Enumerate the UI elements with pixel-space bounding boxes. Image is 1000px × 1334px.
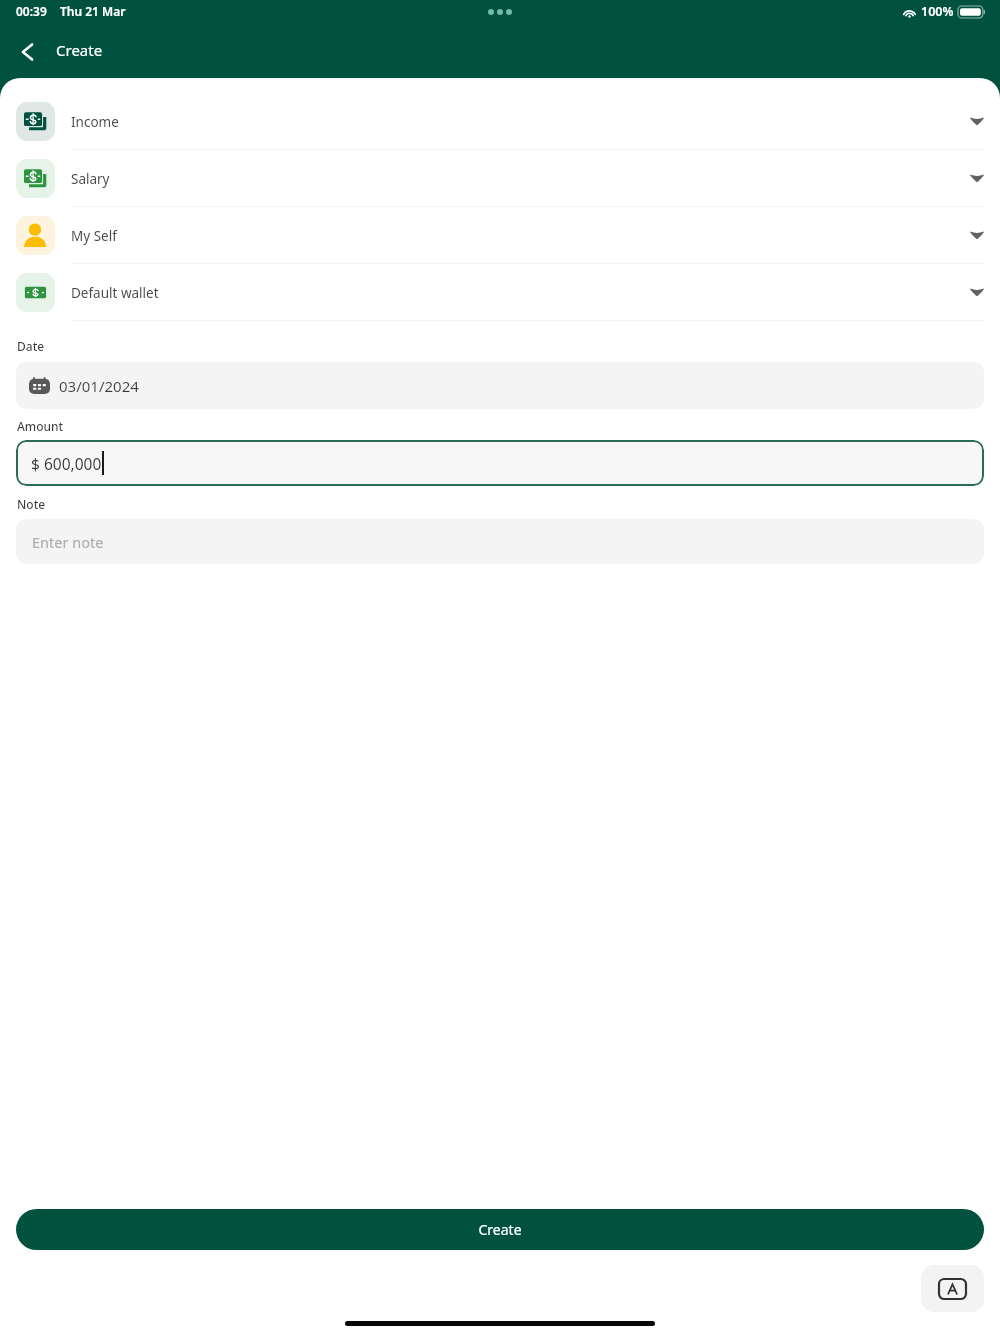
- button[interactable]: Default wallet: [0, 264, 1000, 321]
- button[interactable]: Income: [0, 93, 1000, 150]
- staticText: Note: [17, 496, 46, 512]
- staticText: Create: [56, 40, 103, 60]
- button[interactable]: 03/01/2024: [16, 362, 984, 409]
- staticText: $ 600,000: [31, 453, 102, 474]
- button[interactable]: My Self: [0, 207, 1000, 264]
- button[interactable]: Enter note: [16, 519, 984, 564]
- staticText: 00:39: [16, 3, 47, 19]
- staticText: Income: [71, 113, 119, 131]
- button[interactable]: Salary: [0, 150, 1000, 207]
- button[interactable]: Back: [7, 33, 47, 73]
- staticText: Enter note: [32, 532, 104, 552]
- staticText: 03/01/2024: [59, 376, 139, 396]
- staticText: Create: [478, 1220, 522, 1239]
- staticText: My Self: [71, 227, 117, 245]
- staticText: Default wallet: [71, 284, 159, 302]
- staticText: Thu 21 Mar: [60, 3, 126, 19]
- button[interactable]: Create: [16, 1209, 984, 1250]
- staticText: Date: [17, 338, 45, 354]
- staticText: Salary: [71, 170, 110, 188]
- staticText: 100%: [921, 3, 954, 20]
- button[interactable]: $ 600,000: [16, 440, 984, 486]
- button[interactable]: Switch keyboard: [921, 1265, 984, 1312]
- staticText: Amount: [17, 418, 64, 434]
